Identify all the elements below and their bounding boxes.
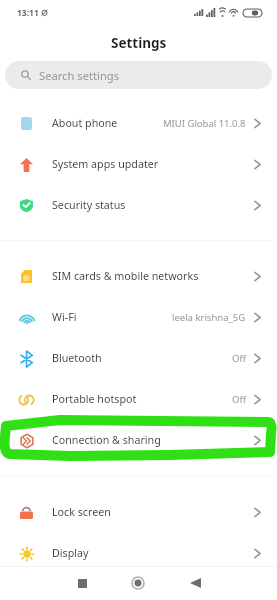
button[interactable]: About phone (0, 103, 277, 144)
staticText: Display (52, 546, 89, 561)
button[interactable]: Security status (0, 185, 277, 226)
staticText: leela krishna_5G (172, 311, 246, 324)
staticText: Search settings (39, 68, 120, 83)
button[interactable]: Wi-Fi (0, 297, 277, 338)
staticText: 13:11 (17, 7, 39, 19)
button[interactable]: System apps updater (0, 144, 277, 185)
button[interactable]: Bluetooth (0, 338, 277, 379)
staticText: About phone (52, 116, 118, 131)
staticText: Off (232, 352, 246, 365)
staticText: Security status (52, 198, 126, 213)
staticText: Portable hotspot (52, 392, 137, 407)
staticText: Bluetooth (52, 351, 102, 366)
button[interactable]: Portable hotspot (0, 379, 277, 420)
button[interactable]: Back (180, 570, 210, 596)
staticText: Settings (111, 34, 167, 52)
button[interactable]: SIM cards & mobile networks (0, 256, 277, 297)
staticText: MIUI Global 11.0.8 (163, 117, 246, 130)
button[interactable]: Recents (67, 570, 97, 596)
button[interactable]: Connection & sharing (0, 420, 277, 461)
button[interactable]: Display (0, 533, 277, 574)
button[interactable]: Home (123, 570, 153, 596)
button[interactable]: Search settings (5, 61, 272, 89)
button[interactable]: Lock screen (0, 492, 277, 533)
staticText: System apps updater (52, 157, 159, 172)
staticText: Connection & sharing (52, 433, 161, 448)
staticText: Wi-Fi (52, 310, 77, 325)
staticText: Lock screen (52, 505, 111, 520)
staticText: Off (232, 393, 246, 406)
staticText: SIM cards & mobile networks (52, 269, 199, 284)
